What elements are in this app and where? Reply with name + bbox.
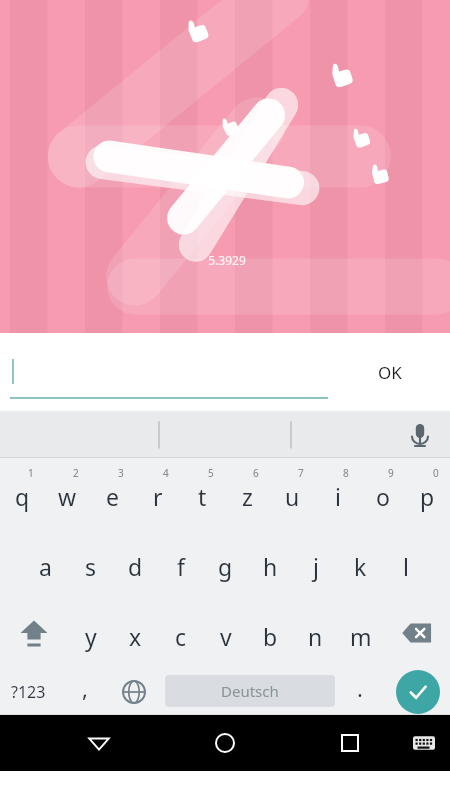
button[interactable]: v	[203, 598, 248, 668]
staticText: v	[220, 621, 232, 652]
staticText: 8	[343, 466, 349, 480]
staticText: t	[198, 481, 207, 512]
staticText: m	[350, 621, 372, 652]
button[interactable]: d	[113, 528, 158, 598]
button[interactable]: 4	[135, 458, 180, 528]
button[interactable]: 1	[0, 458, 45, 528]
button[interactable]: c	[158, 598, 203, 668]
staticText: l	[403, 551, 409, 582]
staticText: 5	[208, 466, 214, 480]
staticText: 0	[433, 466, 439, 480]
button[interactable]: 7	[270, 458, 315, 528]
button[interactable]: .	[338, 668, 382, 715]
staticText: o	[376, 481, 390, 512]
staticText: Deutsch	[221, 681, 279, 701]
staticText: j	[313, 551, 319, 582]
staticText: 1	[28, 466, 34, 480]
staticText: 7	[298, 466, 304, 480]
button[interactable]: g	[203, 528, 248, 598]
staticText: q	[15, 481, 30, 512]
staticText: x	[129, 621, 142, 652]
staticText: r	[153, 481, 163, 512]
staticText: p	[420, 481, 435, 512]
button[interactable]: Change language	[110, 668, 158, 715]
staticText: 3	[118, 466, 124, 480]
button[interactable]: h	[248, 528, 293, 598]
button[interactable]: 0	[405, 458, 450, 528]
staticText: n	[308, 621, 323, 652]
staticText: k	[354, 551, 367, 582]
staticText: b	[263, 621, 278, 652]
staticText: c	[175, 621, 187, 652]
button[interactable]	[10, 347, 328, 399]
button[interactable]: ,	[62, 668, 108, 715]
button[interactable]: Shift	[0, 598, 68, 668]
staticText: ?123	[11, 681, 46, 703]
button[interactable]: n	[293, 598, 338, 668]
staticText: z	[242, 481, 253, 512]
staticText: 4	[163, 466, 169, 480]
staticText: 6	[253, 466, 259, 480]
button[interactable]: 3	[90, 458, 135, 528]
staticText: s	[85, 551, 97, 582]
button[interactable]: Recents	[326, 719, 374, 767]
staticText: e	[106, 481, 119, 512]
staticText: OK	[378, 361, 402, 384]
button[interactable]: Home	[201, 719, 249, 767]
staticText: a	[39, 551, 52, 582]
button[interactable]: Enter	[386, 668, 450, 715]
staticText: 5.3929	[208, 252, 246, 268]
button[interactable]: j	[293, 528, 338, 598]
button[interactable]: 5.3929	[0, 0, 450, 333]
button[interactable]: 5	[180, 458, 225, 528]
button[interactable]: 9	[360, 458, 405, 528]
staticText: .	[357, 673, 363, 703]
staticText: y	[85, 621, 97, 652]
button[interactable]: 8	[315, 458, 360, 528]
button[interactable]: 6	[225, 458, 270, 528]
button[interactable]: ?123	[0, 668, 57, 715]
button[interactable]: Voice input	[398, 413, 442, 457]
button[interactable]: 2	[45, 458, 90, 528]
staticText: h	[263, 551, 278, 582]
staticText: i	[335, 481, 341, 512]
button[interactable]: k	[338, 528, 383, 598]
button[interactable]: Deutsch	[165, 675, 335, 707]
staticText: w	[58, 481, 77, 512]
staticText: 2	[73, 466, 79, 480]
button[interactable]: s	[68, 528, 113, 598]
staticText: ,	[82, 673, 88, 703]
button[interactable]: Back	[75, 719, 123, 767]
button[interactable]: m	[338, 598, 383, 668]
staticText: u	[285, 481, 300, 512]
button[interactable]: y	[68, 598, 113, 668]
button[interactable]: f	[158, 528, 203, 598]
button[interactable]: OK	[340, 343, 440, 401]
button[interactable]: Keyboard	[404, 723, 444, 763]
button[interactable]: l	[383, 528, 428, 598]
button[interactable]: x	[113, 598, 158, 668]
staticText: g	[218, 551, 233, 582]
button[interactable]: a	[23, 528, 68, 598]
button[interactable]: b	[248, 598, 293, 668]
staticText: d	[128, 551, 143, 582]
staticText: 9	[388, 466, 394, 480]
button[interactable]: Backspace	[383, 598, 450, 668]
staticText: f	[177, 551, 185, 582]
